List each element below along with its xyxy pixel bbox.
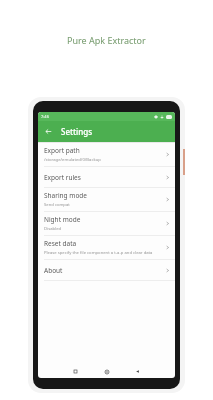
staticText: /storage/emulated/0/Backup bbox=[44, 157, 101, 163]
button[interactable]: Reset data bbox=[38, 236, 175, 259]
button[interactable]: Back bbox=[42, 125, 55, 138]
staticText: Reset data bbox=[44, 239, 77, 248]
button[interactable]: Night mode bbox=[38, 212, 175, 235]
button[interactable]: Recents bbox=[70, 366, 81, 377]
staticText: Sharing mode bbox=[44, 191, 87, 200]
staticText: Export rules bbox=[44, 173, 81, 182]
staticText: Settings bbox=[61, 126, 93, 137]
staticText: Export path bbox=[44, 146, 80, 155]
staticText: Night mode bbox=[44, 215, 81, 224]
staticText: About bbox=[44, 266, 63, 275]
button[interactable]: Back bbox=[132, 366, 143, 377]
button[interactable]: Export rules bbox=[38, 167, 175, 187]
button[interactable]: About bbox=[38, 260, 175, 280]
button[interactable]: Home bbox=[101, 366, 112, 377]
button[interactable]: Export path bbox=[38, 143, 175, 166]
staticText: Pure Apk Extractor bbox=[67, 34, 146, 46]
button[interactable]: Sharing mode bbox=[38, 188, 175, 211]
staticText: Please specify the file component a t-a-… bbox=[44, 250, 153, 256]
staticText: Disabled bbox=[44, 226, 62, 232]
staticText: Send compat bbox=[44, 202, 70, 208]
staticText: 7:46 bbox=[41, 114, 49, 119]
